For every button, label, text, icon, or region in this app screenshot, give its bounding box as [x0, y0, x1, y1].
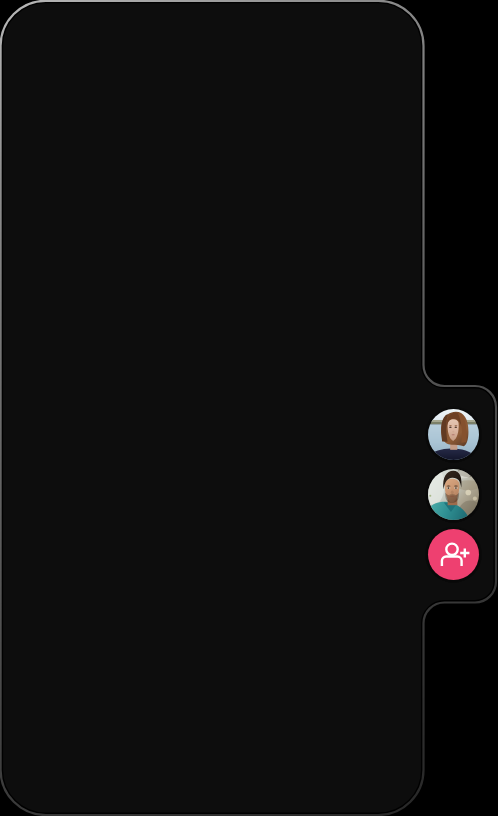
button[interactable]: Open chat with Hannah [425, 406, 482, 463]
button[interactable]: Add person [425, 526, 482, 583]
button[interactable]: Open chat with Marco [425, 466, 482, 523]
